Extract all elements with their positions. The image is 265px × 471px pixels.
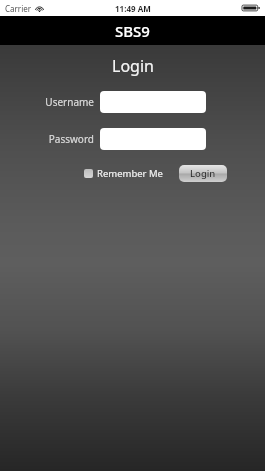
button[interactable]: Remember Me bbox=[84, 167, 163, 180]
button[interactable]: Login bbox=[179, 165, 227, 182]
staticText: Username bbox=[45, 95, 94, 109]
staticText: Login bbox=[190, 167, 216, 180]
button[interactable]: Username bbox=[100, 91, 206, 113]
staticText: Login bbox=[112, 55, 154, 77]
staticText: Remember Me bbox=[97, 167, 163, 180]
button[interactable]: Password bbox=[100, 128, 206, 150]
staticText: Carrier bbox=[5, 3, 32, 14]
staticText: 11:49 AM bbox=[115, 3, 151, 14]
staticText: Password bbox=[48, 132, 94, 146]
staticText: SBS9 bbox=[115, 21, 150, 41]
